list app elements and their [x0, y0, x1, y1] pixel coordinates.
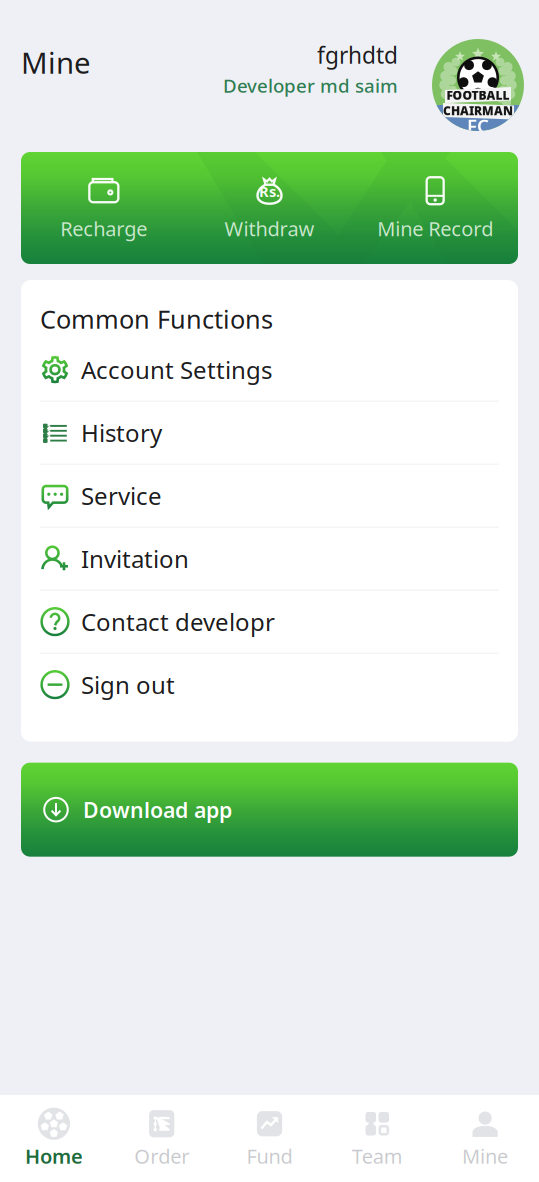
staticText: Mine	[21, 43, 91, 82]
button[interactable]: Service	[21, 465, 518, 527]
staticText: Fund	[246, 1143, 292, 1169]
staticText: Contact developr	[81, 606, 275, 638]
staticText: Mine	[462, 1143, 508, 1169]
staticText: Common Functions	[40, 302, 273, 336]
staticText: CHAIRMAN	[443, 102, 513, 118]
staticText: Developer md saim	[223, 73, 398, 98]
staticText: Withdraw	[224, 215, 314, 242]
staticText: Mine Record	[377, 215, 493, 242]
staticText: Team	[352, 1143, 403, 1169]
button[interactable]: History	[21, 402, 518, 464]
staticText: Home	[25, 1143, 83, 1169]
button[interactable]: Team	[323, 1095, 431, 1181]
staticText: Sign out	[81, 669, 175, 701]
button[interactable]: Invitation	[21, 528, 518, 590]
staticText: FOOTBALL	[446, 87, 509, 103]
button[interactable]: Rs.	[187, 152, 352, 264]
button[interactable]: Account Settings	[21, 339, 518, 401]
button[interactable]: Recharge	[21, 152, 187, 264]
button[interactable]: Contact developr	[21, 591, 518, 653]
button[interactable]: Mine	[431, 1095, 539, 1181]
staticText: fgrhdtd	[317, 40, 398, 70]
button[interactable]: Sign out	[21, 654, 518, 716]
button[interactable]: Mine Record	[352, 152, 518, 264]
staticText: Service	[81, 480, 162, 512]
button[interactable]: Download app	[21, 763, 518, 857]
staticText: Rs.	[259, 181, 280, 201]
button[interactable]: Home	[0, 1095, 108, 1181]
staticText: Order	[134, 1143, 189, 1169]
staticText: Account Settings	[81, 354, 272, 386]
staticText: Invitation	[81, 543, 189, 575]
staticText: History	[81, 417, 162, 449]
staticText: FC	[467, 113, 489, 138]
button[interactable]: Fund	[216, 1095, 323, 1181]
staticText: Download app	[83, 795, 232, 824]
button[interactable]: Order	[108, 1095, 216, 1181]
staticText: Recharge	[60, 215, 147, 242]
